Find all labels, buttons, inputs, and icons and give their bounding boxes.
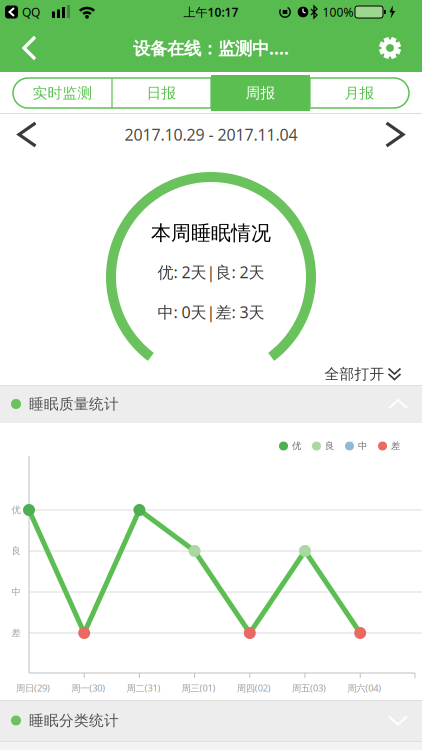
staticText: 差 <box>11 627 20 639</box>
staticText: 优: 2天|良: 2天 <box>157 261 264 283</box>
button[interactable]: 周报 <box>211 75 310 111</box>
staticText: 睡眠分类统计 <box>29 711 119 729</box>
staticText: 周六(04) <box>347 682 381 694</box>
button[interactable]: 实时监测 <box>13 78 112 108</box>
staticText: 周报 <box>245 84 275 102</box>
staticText: 优 <box>292 440 301 452</box>
button[interactable]: Back <box>4 29 48 67</box>
button[interactable]: 全部打开 <box>324 365 401 383</box>
staticText: 睡眠质量统计 <box>29 395 119 413</box>
staticText: 差 <box>391 440 400 452</box>
staticText: 日报 <box>146 84 176 102</box>
button[interactable]: 日报 <box>112 78 211 108</box>
button[interactable]: Previous week <box>7 119 41 149</box>
staticText: 实时监测 <box>32 84 92 102</box>
staticText: 中 <box>358 440 367 452</box>
staticText: 周四(02) <box>237 682 271 694</box>
button[interactable]: Settings <box>370 28 410 68</box>
staticText: 设备在线：监测中.... <box>133 36 289 59</box>
staticText: 周三(01) <box>182 682 216 694</box>
staticText: 中: 0天|差: 3天 <box>157 301 264 323</box>
staticText: 100% <box>322 4 353 20</box>
staticText: 周二(31) <box>126 682 160 694</box>
staticText: 周一(30) <box>71 682 105 694</box>
button[interactable]: 月报 <box>310 78 409 108</box>
staticText: 本周睡眠情况 <box>151 221 271 245</box>
staticText: 上午10:17 <box>183 4 238 20</box>
staticText: 周日(29) <box>16 682 50 694</box>
staticText: 良 <box>11 545 20 557</box>
staticText: 月报 <box>344 84 374 102</box>
staticText: QQ <box>22 4 40 20</box>
staticText: 周五(03) <box>292 682 326 694</box>
staticText: 中 <box>11 586 20 598</box>
button[interactable]: Next week <box>381 119 415 149</box>
button[interactable]: 睡眠分类统计 <box>0 700 422 741</box>
staticText: 良 <box>325 440 334 452</box>
staticText: 全部打开 <box>324 365 384 383</box>
staticText: 2017.10.29 - 2017.11.04 <box>124 124 297 145</box>
button[interactable]: 睡眠质量统计 <box>0 385 422 423</box>
staticText: 优 <box>11 504 20 516</box>
